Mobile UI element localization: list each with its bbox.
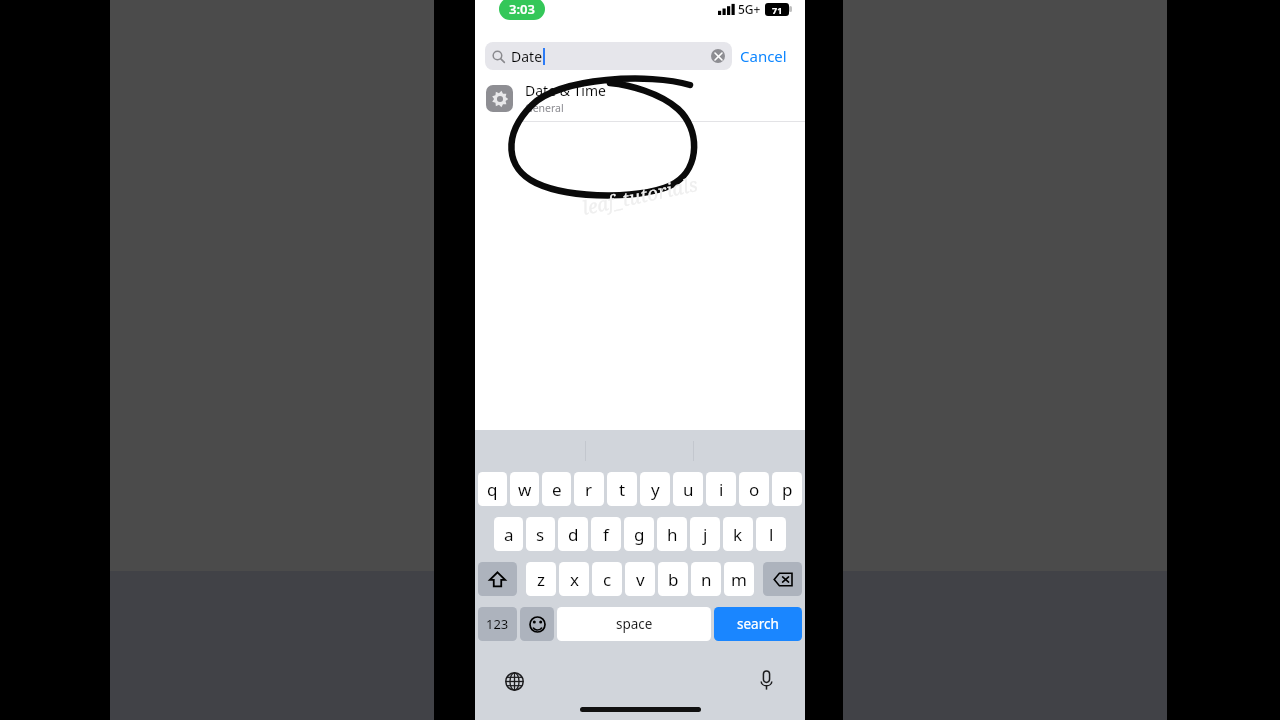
staticText: 71	[772, 4, 783, 16]
staticText: Cancel	[740, 46, 787, 66]
button[interactable]: c	[592, 562, 622, 596]
staticText: g	[634, 523, 645, 546]
button[interactable]: search	[714, 607, 802, 641]
staticText: 5G+	[738, 1, 761, 17]
button[interactable]: b	[658, 562, 688, 596]
button[interactable]: Cancel	[732, 42, 795, 70]
button[interactable]: Dictate	[753, 667, 779, 693]
button[interactable]: x	[559, 562, 589, 596]
staticText: x	[570, 568, 579, 591]
button[interactable]: r	[574, 472, 604, 506]
staticText: u	[683, 478, 694, 501]
button[interactable]: n	[691, 562, 721, 596]
staticText: b	[668, 568, 679, 591]
staticText: j	[703, 523, 708, 546]
staticText: v	[636, 568, 645, 591]
staticText: m	[731, 568, 747, 591]
button[interactable]: a	[494, 517, 523, 551]
staticText: Date & Time	[525, 81, 606, 100]
button[interactable]: h	[657, 517, 687, 551]
button[interactable]: Backspace	[763, 562, 802, 596]
button[interactable]: f	[591, 517, 621, 551]
button[interactable]: d	[558, 517, 588, 551]
button[interactable]: z	[526, 562, 556, 596]
staticText: r	[585, 478, 593, 501]
staticText: General	[525, 101, 564, 115]
staticText: z	[537, 568, 545, 591]
button[interactable]: e	[542, 472, 571, 506]
button[interactable]: p	[772, 472, 802, 506]
staticText: s	[536, 523, 545, 546]
staticText: h	[667, 523, 678, 546]
button[interactable]: Clear text	[711, 49, 725, 63]
button[interactable]: y	[640, 472, 670, 506]
button[interactable]: g	[624, 517, 654, 551]
button[interactable]: Emoji	[520, 607, 554, 641]
staticText: o	[749, 478, 760, 501]
button[interactable]: m	[724, 562, 754, 596]
staticText: search	[737, 615, 779, 633]
staticText: a	[504, 523, 514, 546]
button[interactable]: k	[723, 517, 753, 551]
button[interactable]: Change keyboard	[501, 668, 527, 694]
staticText: i	[719, 478, 724, 501]
staticText: space	[616, 615, 653, 633]
staticText: n	[701, 568, 712, 591]
staticText: y	[651, 478, 660, 501]
button[interactable]: i	[706, 472, 736, 506]
button[interactable]: Shift	[478, 562, 517, 596]
staticText: e	[552, 478, 562, 501]
staticText: f	[603, 523, 609, 546]
staticText: q	[487, 478, 498, 501]
button[interactable]: j	[690, 517, 720, 551]
button[interactable]: o	[739, 472, 769, 506]
staticText: t	[619, 478, 626, 501]
staticText: k	[733, 523, 743, 546]
staticText: 3:03	[509, 0, 535, 18]
staticText: c	[603, 568, 612, 591]
button[interactable]: Date & Time	[475, 74, 805, 122]
button[interactable]: t	[607, 472, 637, 506]
button[interactable]: w	[510, 472, 539, 506]
staticText: p	[782, 478, 793, 501]
button[interactable]: v	[625, 562, 655, 596]
button[interactable]: l	[756, 517, 786, 551]
button[interactable]: space	[557, 607, 711, 641]
staticText: w	[518, 478, 532, 501]
staticText: leaf_tutorials	[580, 171, 700, 221]
button[interactable]: Date	[485, 42, 732, 70]
button[interactable]: u	[673, 472, 703, 506]
staticText: Date	[511, 47, 543, 66]
button[interactable]: q	[478, 472, 507, 506]
button[interactable]: 123	[478, 607, 517, 641]
staticText: l	[769, 523, 774, 546]
button[interactable]: s	[526, 517, 555, 551]
staticText: d	[568, 523, 579, 546]
staticText: 123	[486, 615, 509, 633]
